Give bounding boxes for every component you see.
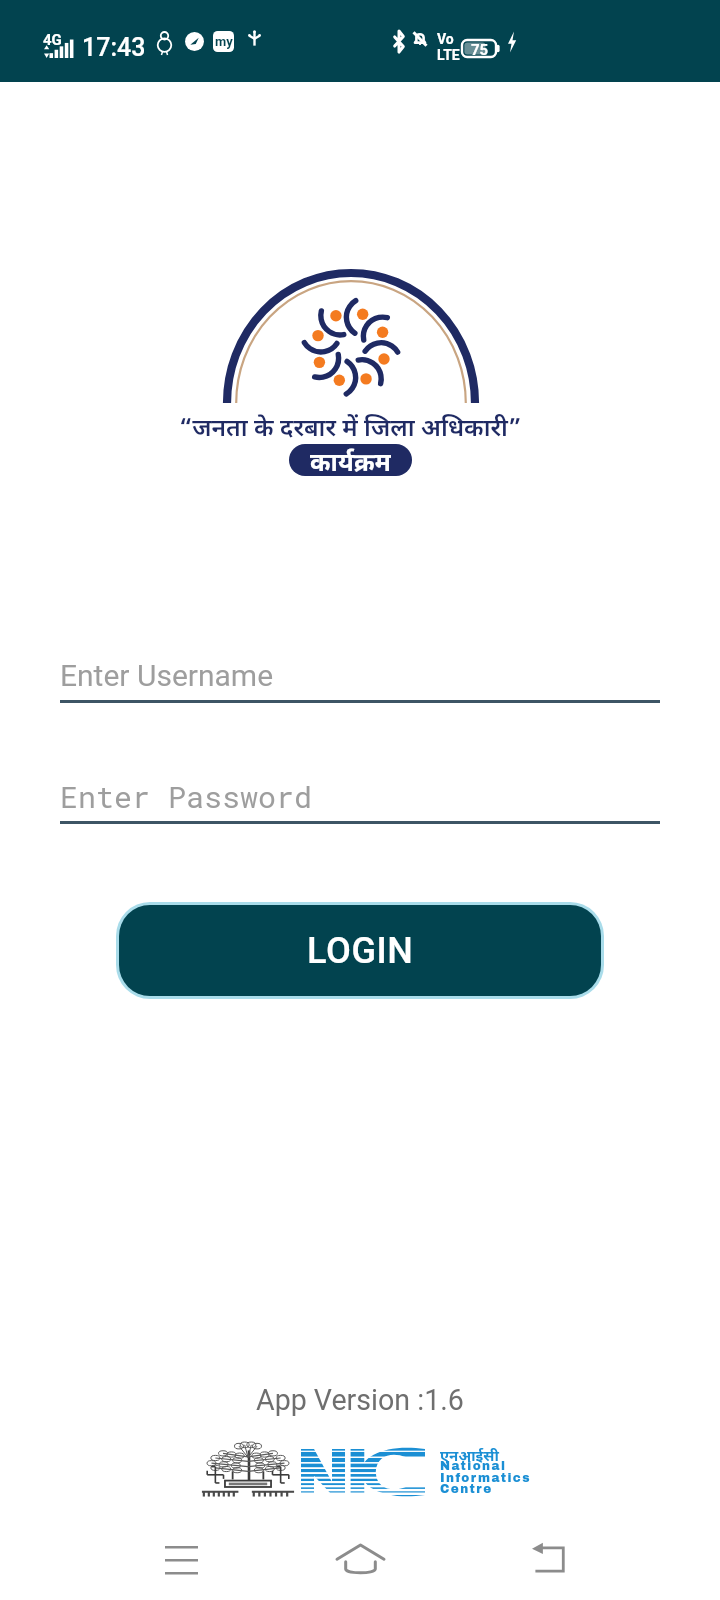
staticText: National bbox=[440, 1459, 507, 1472]
staticText: 4G bbox=[43, 31, 62, 49]
staticText: कार्यक्रम bbox=[310, 444, 391, 476]
staticText: App Version :1.6 bbox=[256, 1383, 464, 1417]
staticText: Informatics bbox=[440, 1471, 531, 1484]
staticText: 17:43 bbox=[82, 33, 146, 62]
staticText: my bbox=[215, 34, 233, 49]
staticText: “जनता के दरबार में जिला अधिकारी” bbox=[179, 410, 522, 443]
button[interactable]: Enter Username bbox=[60, 658, 660, 703]
staticText: एनआईसी bbox=[440, 1445, 499, 1465]
button[interactable]: Recent apps bbox=[121, 1516, 241, 1600]
button[interactable]: Enter Password bbox=[60, 777, 660, 824]
staticText: Enter Username bbox=[60, 658, 274, 693]
button[interactable]: Home bbox=[300, 1516, 420, 1600]
staticText: LOGIN bbox=[307, 930, 414, 972]
staticText: Enter Password bbox=[60, 777, 313, 817]
staticText: Vo bbox=[437, 31, 454, 47]
button[interactable]: LOGIN bbox=[119, 905, 601, 996]
button[interactable]: Back bbox=[489, 1516, 609, 1600]
staticText: LTE bbox=[437, 47, 460, 63]
staticText: Centre bbox=[440, 1482, 493, 1495]
staticText: 75 bbox=[471, 41, 489, 59]
